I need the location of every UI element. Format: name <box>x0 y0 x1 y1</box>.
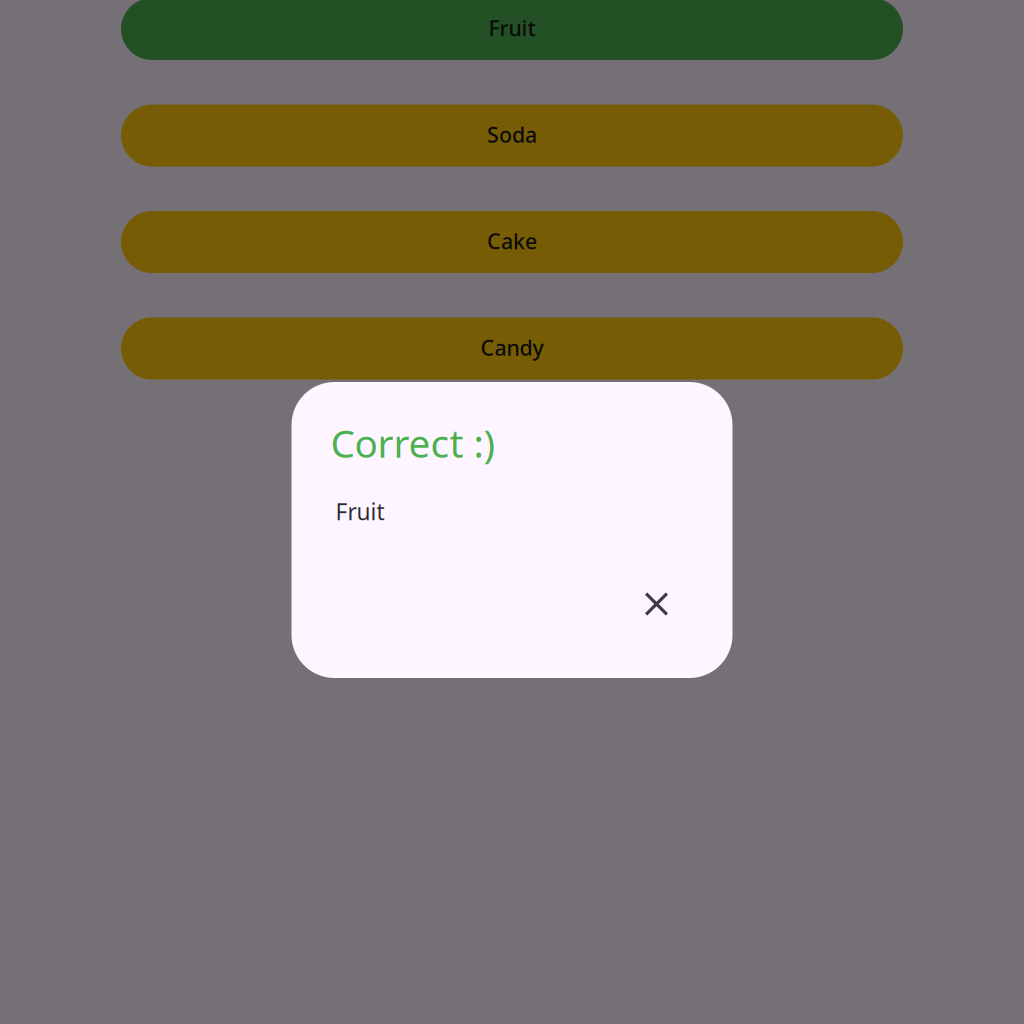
staticText: Fruit <box>335 496 384 526</box>
staticText: Cake <box>487 227 537 255</box>
button[interactable]: Cake <box>121 211 903 273</box>
staticText: Fruit <box>488 14 535 42</box>
staticText: Soda <box>487 120 537 149</box>
button[interactable]: Fruit <box>121 0 903 60</box>
staticText: Correct :) <box>330 417 495 468</box>
button[interactable]: Candy <box>121 317 903 379</box>
button[interactable]: Soda <box>121 104 903 166</box>
button[interactable]: Close <box>634 582 678 626</box>
staticText: Candy <box>480 333 543 362</box>
